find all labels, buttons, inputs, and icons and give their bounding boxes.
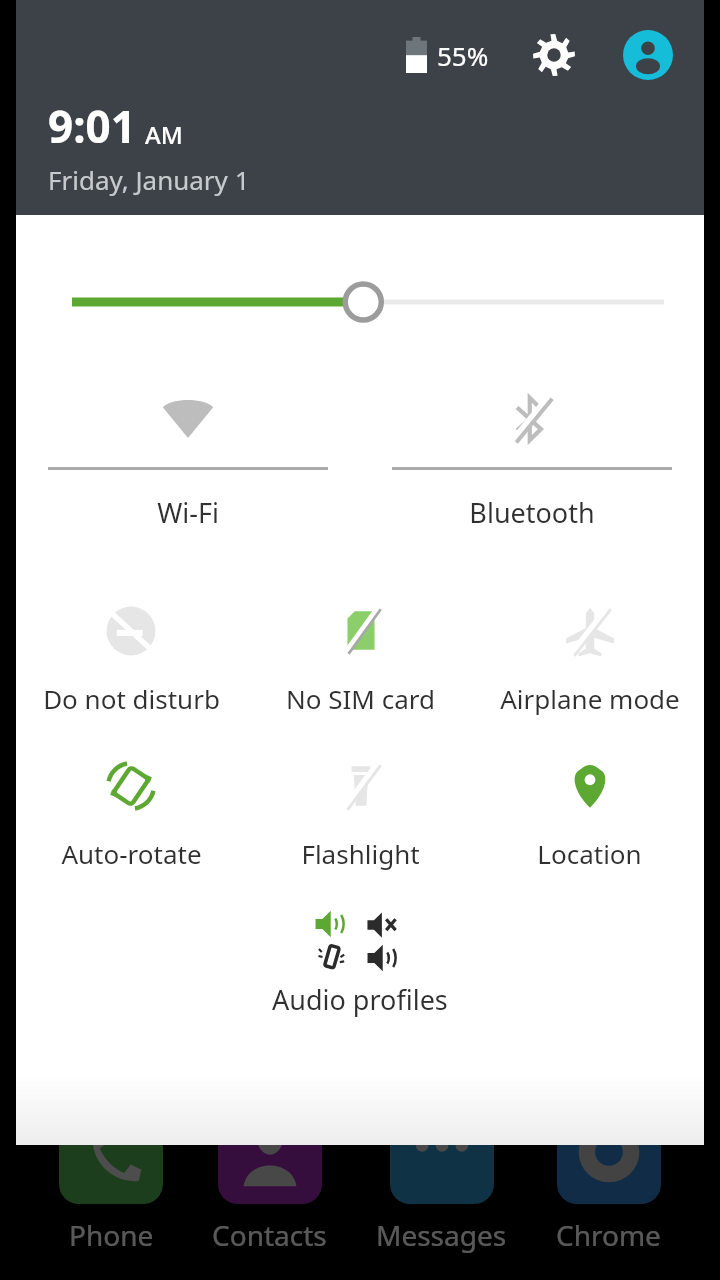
button[interactable]: Audio profiles <box>16 905 704 1018</box>
staticText: 55% <box>437 38 489 73</box>
staticText: Chrome <box>556 1216 661 1254</box>
button[interactable]: Auto-rotate <box>16 754 246 871</box>
button[interactable]: Messages <box>376 1100 507 1254</box>
staticText: Auto-rotate <box>61 836 202 871</box>
staticText: Audio profiles <box>272 981 448 1018</box>
button[interactable]: Airplane mode <box>475 599 704 716</box>
button[interactable]: Flashlight <box>246 754 475 871</box>
staticText: Do not disturb <box>43 681 220 716</box>
staticText: Phone <box>69 1216 154 1254</box>
button[interactable]: Wi-Fi <box>16 381 360 531</box>
button[interactable]: Location <box>475 754 704 871</box>
button[interactable]: Settings <box>527 28 581 82</box>
staticText: Friday, January 1 <box>48 162 250 197</box>
button[interactable]: Do not disturb <box>16 599 246 716</box>
staticText: Location <box>537 836 642 871</box>
button[interactable]: No SIM card <box>246 599 475 716</box>
staticText: Messages <box>376 1216 507 1254</box>
button[interactable]: Brightness <box>16 277 704 327</box>
staticText: Wi-Fi <box>157 494 219 531</box>
staticText: AM <box>145 118 183 151</box>
button[interactable]: 9:01 <box>48 96 250 197</box>
button[interactable]: User profile <box>621 28 675 82</box>
staticText: Bluetooth <box>469 494 595 531</box>
button[interactable]: Bluetooth <box>360 381 704 531</box>
staticText: No SIM card <box>286 681 435 716</box>
staticText: Contacts <box>212 1216 327 1254</box>
button[interactable]: Chrome <box>556 1100 661 1254</box>
button[interactable]: Battery 55 percent <box>406 37 489 73</box>
staticText: Flashlight <box>301 836 420 871</box>
button[interactable]: Phone <box>59 1100 163 1254</box>
staticText: 9:01 <box>48 96 136 156</box>
button[interactable]: Contacts <box>212 1100 327 1254</box>
staticText: Airplane mode <box>500 681 680 716</box>
